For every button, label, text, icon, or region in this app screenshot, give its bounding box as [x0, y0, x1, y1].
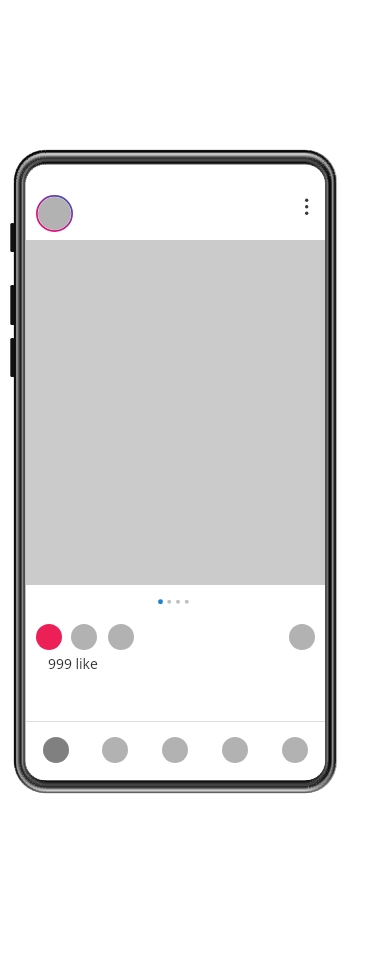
button[interactable]: Home: [43, 737, 69, 763]
button[interactable]: Activity: [222, 737, 248, 763]
button[interactable]: Search: [102, 737, 128, 763]
button[interactable]: Save: [289, 624, 315, 650]
button[interactable]: Profile: [36, 195, 73, 232]
button[interactable]: Like: [36, 624, 62, 650]
button[interactable]: Profile: [282, 737, 308, 763]
button[interactable]: More options: [295, 195, 319, 219]
button[interactable]: 999 like: [48, 654, 98, 673]
button[interactable]: Comment: [71, 624, 97, 650]
staticText: 999 like: [48, 654, 98, 673]
button[interactable]: Share: [108, 624, 134, 650]
button[interactable]: New post: [162, 737, 188, 763]
